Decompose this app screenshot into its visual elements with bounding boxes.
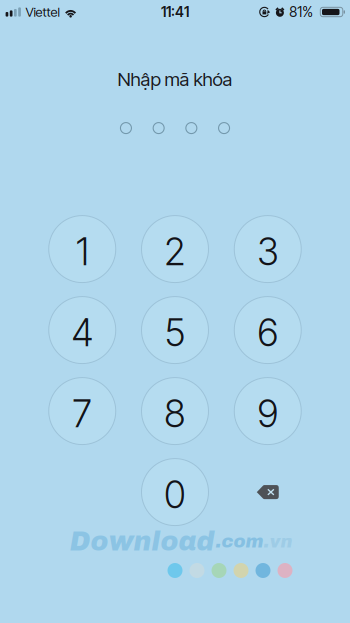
staticText: 4 [71,310,93,355]
button[interactable]: 3 [234,216,301,283]
button[interactable]: 7 [49,378,116,445]
staticText: 3 [257,229,279,274]
button[interactable]: 2 [141,216,208,283]
button[interactable]: 4 [49,297,116,364]
staticText: Viettel [25,4,59,20]
staticText: .com [215,532,263,551]
button[interactable]: 9 [234,378,301,445]
button[interactable]: 0 [141,459,208,526]
button[interactable]: 8 [141,378,208,445]
button[interactable]: 1 [49,216,116,283]
button[interactable]: Delete [234,459,301,526]
staticText: 1 [76,229,89,274]
staticText: 0 [164,472,186,517]
staticText: Download [69,527,214,556]
staticText: 11:41 [161,3,189,20]
button[interactable]: 5 [141,297,208,364]
staticText: 9 [257,391,278,436]
staticText: Nhập mã khóa [117,68,232,91]
staticText: 8 [164,391,186,436]
staticText: 2 [164,229,186,274]
staticText: 7 [72,391,92,436]
staticText: 6 [257,310,278,355]
staticText: .vn [263,532,292,551]
staticText: 81% [289,3,313,20]
button[interactable]: 6 [234,297,301,364]
staticText: 5 [164,310,185,355]
